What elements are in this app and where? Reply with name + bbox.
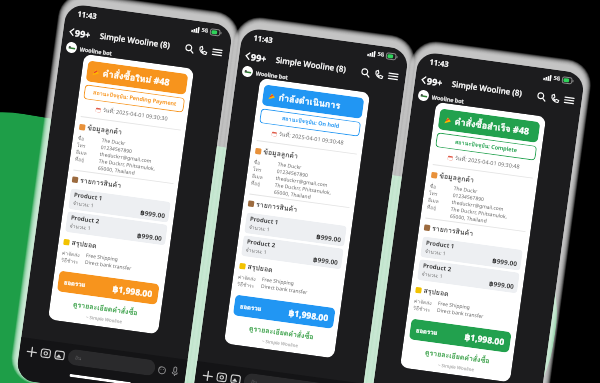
button[interactable]: คำสั่งซื้อสำเร็จ #48: [438, 108, 540, 143]
staticText: รายการสินค้า: [79, 174, 122, 191]
button[interactable]: Search: [357, 64, 373, 80]
staticText: ฿999.00: [136, 231, 162, 243]
staticText: 65000, Thailand: [449, 213, 488, 225]
staticText: ชื่อ: [253, 158, 278, 168]
button[interactable]: 99+: [243, 47, 269, 67]
staticText: ชื่อ: [77, 134, 102, 144]
button[interactable]: สถานะปัจจุบัน: On hold: [259, 108, 361, 137]
button[interactable]: 99+: [67, 23, 93, 43]
button[interactable]: ยอดรวม: [57, 270, 160, 305]
staticText: คำสั่งซื้อสำเร็จ #48: [454, 115, 530, 139]
staticText: theduckrr@gmail.com: [99, 151, 153, 165]
staticText: จำนวน: 1: [248, 223, 270, 233]
button[interactable]: คำสั่งซื้อใหม่ #48: [86, 60, 188, 95]
staticText: Product 2: [70, 214, 100, 225]
button[interactable]: สถานะปัจจุบัน: Complete: [435, 132, 537, 161]
staticText: ที่อยู่: [427, 203, 451, 213]
staticText: โทร: [76, 141, 101, 151]
staticText: อีเมล: [251, 172, 276, 182]
staticText: จำนวน: 1: [72, 199, 94, 209]
staticText: ฿999.00: [312, 255, 338, 267]
staticText: Product 1: [73, 191, 103, 203]
staticText: Direct bank transfer: [436, 307, 484, 320]
staticText: Product 2: [246, 238, 276, 249]
staticText: ฿999.00: [140, 208, 166, 220]
button[interactable]: Menu: [385, 68, 401, 84]
staticText: อัน: [74, 353, 82, 362]
button[interactable]: Product 1: [244, 212, 347, 247]
button[interactable]: สถานะปัจจุบัน: Pending Payment: [83, 84, 185, 113]
staticText: The Duckrr, Phitsanulok,: [450, 206, 508, 220]
button[interactable]: Voice: [167, 364, 182, 379]
button[interactable]: กำลังดำเนินการ #48: [262, 84, 364, 119]
staticText: Wooline bot: [255, 69, 289, 81]
button[interactable]: Simple Wooline (8): [99, 30, 171, 50]
button[interactable]: Add: [23, 343, 39, 359]
staticText: จำนวน: 1: [421, 269, 443, 280]
button[interactable]: ดูรายละเอียดคำสั่งซื้อ: [231, 320, 332, 345]
button[interactable]: ยอดรวม: [409, 318, 512, 353]
staticText: อีเมล: [75, 148, 100, 158]
button[interactable]: ดูรายละเอียดคำสั่งซื้อ: [407, 344, 508, 369]
staticText: Free Shipping: [437, 300, 471, 311]
staticText: 01234567890: [276, 168, 309, 179]
staticText: The Duckr: [277, 161, 302, 171]
staticText: 5G: [377, 50, 385, 58]
button[interactable]: Product 2: [417, 259, 520, 293]
staticText: ข้อมูลลูกค้า: [439, 170, 475, 186]
staticText: ฿1,998.00: [464, 331, 505, 348]
staticText: อัน: [250, 377, 258, 383]
staticText: Wooline bot: [79, 45, 113, 57]
staticText: สถานะปัจจุบัน: On hold: [281, 114, 340, 131]
button[interactable]: Simple Wooline (8): [275, 54, 347, 74]
button[interactable]: Product 1: [68, 188, 171, 223]
button[interactable]: Search: [533, 88, 549, 104]
button[interactable]: Product 2: [65, 211, 168, 245]
staticText: [74, 161, 98, 172]
button[interactable]: Menu: [561, 92, 577, 108]
staticText: theduckrr@gmail.com: [451, 199, 505, 213]
button[interactable]: Gallery: [51, 347, 67, 363]
button[interactable]: อัน: [67, 348, 156, 376]
button[interactable]: Add: [199, 367, 215, 383]
staticText: Direct bank transfer: [260, 283, 308, 296]
staticText: ที่อยู่: [75, 155, 99, 165]
staticText: โทร: [252, 165, 277, 175]
button[interactable]: Camera: [213, 369, 229, 383]
button[interactable]: Camera: [37, 345, 53, 361]
button[interactable]: Product 1: [420, 236, 523, 271]
button[interactable]: Simple Wooline (8): [451, 78, 523, 98]
button[interactable]: 99+: [419, 71, 445, 91]
button[interactable]: ยอดรวม: [233, 294, 336, 329]
button[interactable]: ดูรายละเอียดคำสั่งซื้อ: [55, 296, 156, 321]
staticText: โทร: [428, 189, 453, 199]
staticText: Direct bank transfer: [84, 259, 132, 272]
button[interactable]: Search: [181, 40, 197, 56]
staticText: ชื่อ: [429, 182, 454, 192]
button[interactable]: Gallery: [227, 371, 243, 383]
staticText: 99+: [250, 50, 268, 64]
button[interactable]: Product 2: [241, 235, 344, 269]
button[interactable]: Call: [371, 66, 387, 82]
staticText: [250, 185, 274, 196]
staticText: สรุปยอด: [423, 285, 450, 299]
staticText: ฿1,998.00: [288, 307, 329, 324]
staticText: วิธีชำระเงิน: [237, 280, 261, 290]
staticText: ฿999.00: [492, 256, 518, 268]
button[interactable]: อัน: [243, 372, 332, 383]
staticText: 65000, Thailand: [97, 165, 136, 177]
button[interactable]: Call: [547, 90, 563, 106]
staticText: 99+: [426, 74, 444, 88]
staticText: theduckrr@gmail.com: [275, 175, 329, 189]
button[interactable]: Emoji: [154, 362, 169, 377]
staticText: Wooline bot: [431, 93, 465, 105]
staticText: ฿999.00: [488, 279, 514, 291]
staticText: ฿999.00: [316, 232, 342, 244]
staticText: ที่อยู่: [251, 179, 275, 189]
button[interactable]: Call: [195, 42, 211, 58]
staticText: ค่าจัดส่ง: [238, 273, 262, 283]
button[interactable]: Menu: [209, 44, 225, 60]
staticText: 11:43: [77, 9, 98, 21]
staticText: The Duckr: [453, 185, 478, 195]
staticText: ยอดรวม: [415, 325, 439, 338]
